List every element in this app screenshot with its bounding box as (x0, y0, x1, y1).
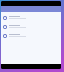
button[interactable] (1, 22, 61, 31)
button[interactable] (1, 31, 61, 40)
button[interactable] (1, 13, 61, 22)
